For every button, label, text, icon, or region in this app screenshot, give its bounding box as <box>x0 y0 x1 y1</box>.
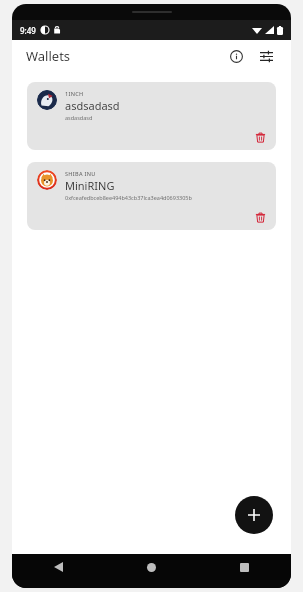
staticText: SHIBA INU <box>65 170 96 177</box>
button[interactable]: Info <box>223 43 249 69</box>
button[interactable]: Delete wallet <box>250 127 270 147</box>
staticText: asdasdasd <box>65 114 93 121</box>
staticText: MiniRING <box>65 178 115 193</box>
staticText: Wallets <box>26 47 71 65</box>
button[interactable]: Add wallet <box>235 496 273 534</box>
button[interactable]: Home <box>105 554 198 580</box>
staticText: 0xfceafedbceb8ee494b43cb37lca3ea4d069330… <box>65 194 192 201</box>
button[interactable]: Filter settings <box>253 43 279 69</box>
button[interactable]: 1INCH <box>27 82 276 150</box>
staticText: asdsadasd <box>65 98 120 113</box>
staticText: 9:49 <box>20 25 36 36</box>
staticText: 1INCH <box>65 90 84 97</box>
button[interactable]: Recent apps <box>198 554 291 580</box>
button[interactable]: Delete wallet <box>250 207 270 227</box>
button[interactable]: Back <box>12 554 105 580</box>
button[interactable]: SHIBA INU <box>27 162 276 230</box>
